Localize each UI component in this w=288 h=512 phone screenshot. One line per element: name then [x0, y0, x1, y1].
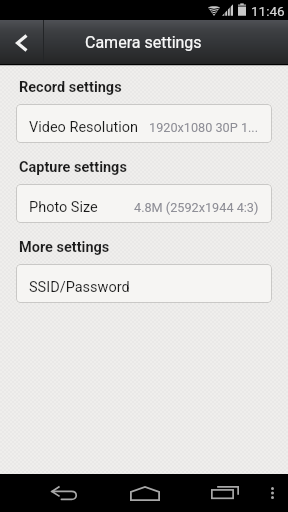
- button[interactable]: Home: [105, 474, 185, 512]
- staticText: 4.8M (2592x1944 4:3): [134, 200, 259, 215]
- staticText: 11:46: [251, 3, 285, 19]
- staticText: Capture settings: [19, 159, 127, 176]
- button[interactable]: SSID/Password: [16, 264, 272, 303]
- staticText: SSID/Password: [29, 279, 130, 296]
- staticText: Video Resolution: [29, 119, 138, 136]
- staticText: More settings: [19, 239, 110, 256]
- staticText: Photo Size: [29, 199, 98, 216]
- button[interactable]: Photo Size: [16, 184, 272, 223]
- button[interactable]: Navigate up: [0, 20, 43, 65]
- button[interactable]: Recent apps: [185, 474, 265, 512]
- button[interactable]: Video Resolution: [16, 104, 272, 143]
- staticText: 1920x1080 30P 1...: [149, 120, 259, 135]
- button[interactable]: Back: [24, 474, 104, 512]
- button[interactable]: More options: [256, 474, 288, 512]
- staticText: Camera settings: [85, 33, 202, 52]
- staticText: Record settings: [19, 79, 122, 96]
